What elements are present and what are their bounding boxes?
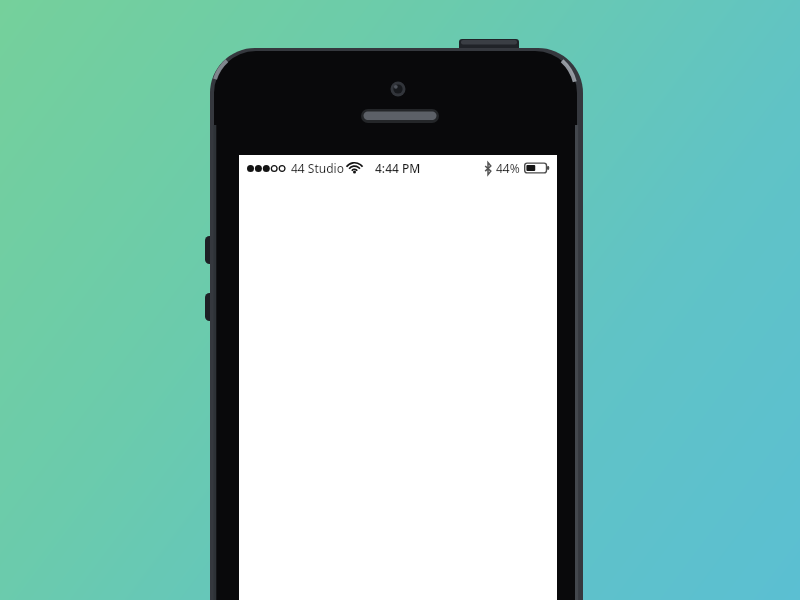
other: Bluetooth bbox=[484, 162, 492, 175]
staticText: 4:44 PM bbox=[375, 160, 421, 176]
staticText: 44% bbox=[496, 160, 520, 176]
button[interactable]: 44 Studio bbox=[239, 155, 557, 180]
staticText: 44 Studio bbox=[291, 160, 344, 176]
other: Battery 44 percent bbox=[524, 162, 549, 174]
